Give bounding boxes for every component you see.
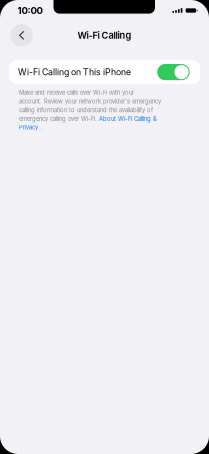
button[interactable]: About Wi-Fi Calling & <box>99 115 157 122</box>
staticText: Wi-Fi Calling on This iPhone <box>18 67 131 77</box>
staticText: ... <box>38 124 44 131</box>
staticText: About Wi-Fi Calling & <box>99 115 157 122</box>
staticText: calling information to understand the av… <box>19 106 153 114</box>
staticText: Wi-Fi Calling <box>77 30 131 41</box>
staticText: Make and receive calls over Wi-Fi with y… <box>19 89 134 96</box>
button[interactable]: Back <box>10 24 33 47</box>
staticText: 10:00 <box>17 5 42 16</box>
button[interactable]: Wi-Fi Calling on This iPhone <box>9 60 200 84</box>
staticText: emergency calling over Wi-Fi. <box>19 115 99 122</box>
button[interactable]: Privacy <box>19 124 38 131</box>
staticText: Privacy <box>19 124 38 131</box>
staticText: account. Review your network provider's … <box>19 98 161 105</box>
